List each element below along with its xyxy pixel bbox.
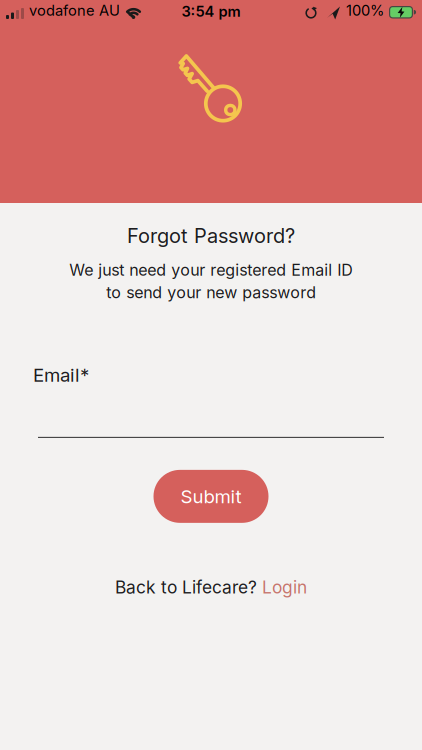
button[interactable]: Submit [153,470,268,523]
staticText: 3:54 pm [181,3,240,20]
staticText: We just need your registered Email ID to… [69,261,353,302]
staticText: Email* [33,364,89,386]
staticText: vodafone AU [29,2,120,19]
staticText: 100% [346,2,384,19]
staticText: Login [262,577,307,597]
button[interactable]: Back to Lifecare? [115,577,307,597]
staticText: Back to Lifecare? [115,577,262,597]
staticText: Submit [180,485,241,507]
staticText: Forgot Password? [127,224,295,248]
